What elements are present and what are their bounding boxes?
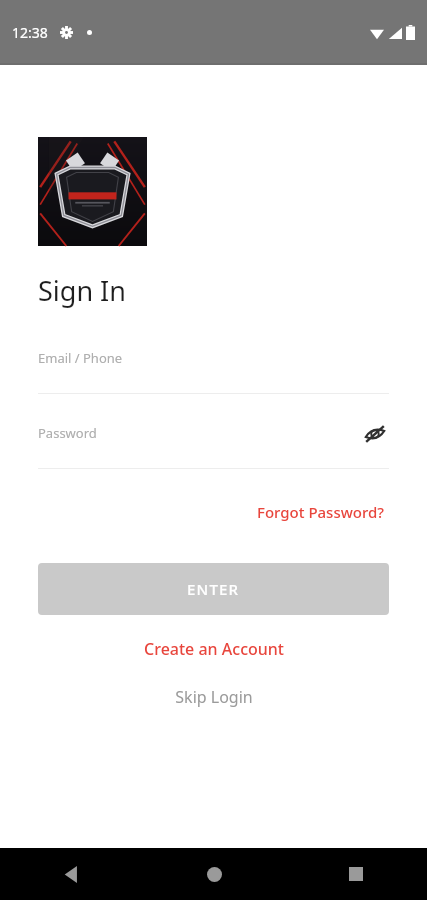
staticText: Email / Phone	[38, 349, 123, 367]
staticText: Skip Login	[175, 686, 253, 708]
button[interactable]: Skip Login	[0, 680, 427, 714]
staticText: Forgot Password?	[257, 502, 385, 522]
button[interactable]: Recent apps	[285, 848, 427, 900]
button[interactable]: ENTER	[38, 563, 389, 615]
button[interactable]: Back	[0, 848, 143, 900]
button[interactable]: Forgot Password?	[253, 498, 389, 526]
staticText: ENTER	[187, 579, 240, 599]
staticText: Create an Account	[144, 638, 284, 660]
button[interactable]: Show password	[361, 420, 389, 448]
button[interactable]: Password	[38, 416, 389, 469]
button[interactable]: Create an Account	[0, 632, 427, 666]
staticText: Sign In	[38, 272, 126, 309]
button[interactable]: Home	[143, 848, 285, 900]
staticText: Password	[38, 424, 97, 442]
button[interactable]: Email / Phone	[38, 341, 389, 394]
staticText: 12:38	[12, 23, 48, 42]
